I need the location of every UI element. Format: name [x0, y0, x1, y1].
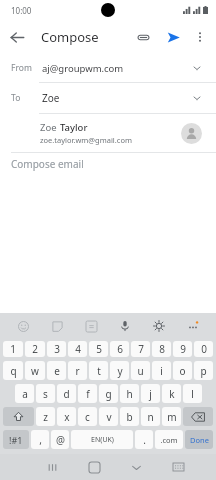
staticText: l [191, 387, 194, 401]
button[interactable]: k [162, 384, 181, 403]
staticText: z [43, 410, 48, 424]
staticText: i [160, 364, 163, 378]
staticText: u [137, 364, 144, 378]
button[interactable]: To [0, 83, 216, 113]
button[interactable]: 3 [47, 341, 66, 357]
staticText: 0 [201, 342, 207, 356]
staticText: p [200, 364, 207, 378]
staticText: .com [160, 435, 178, 445]
button[interactable]: j [141, 384, 160, 403]
staticText: t [97, 364, 101, 378]
button[interactable]: Send [158, 22, 188, 52]
button[interactable]: Voice input [114, 315, 136, 337]
button[interactable]: h [120, 384, 139, 403]
button[interactable]: From [0, 54, 216, 82]
staticText: EN(UK) [91, 435, 114, 445]
button[interactable]: Settings [148, 315, 170, 337]
staticText: 5 [96, 342, 102, 356]
button[interactable]: a [15, 384, 34, 403]
staticText: Compose email [11, 157, 84, 171]
button[interactable]: Zoe [0, 114, 216, 152]
button[interactable]: Home [73, 454, 115, 480]
staticText: 2 [32, 342, 38, 356]
button[interactable]: c [78, 407, 97, 426]
button[interactable]: GIF [80, 315, 102, 337]
button[interactable]: e [47, 361, 66, 380]
staticText: 9 [180, 342, 186, 356]
staticText: w [31, 364, 39, 378]
staticText: aj@groupwm.com [42, 62, 124, 75]
button[interactable]: 5 [89, 341, 108, 357]
button[interactable]: More options [188, 25, 212, 49]
staticText: 10:00 [11, 5, 32, 16]
button[interactable]: 4 [68, 341, 87, 357]
button[interactable]: Compose email [0, 153, 216, 175]
button[interactable]: More [182, 315, 204, 337]
button[interactable]: , [31, 430, 49, 449]
button[interactable]: t [89, 361, 108, 380]
button[interactable]: !#1 [3, 430, 29, 449]
button[interactable]: Emoji [12, 315, 34, 337]
button[interactable]: b [120, 407, 139, 426]
button[interactable]: @ [51, 430, 69, 449]
staticText: y [117, 364, 123, 378]
staticText: . [143, 433, 146, 447]
button[interactable]: EN(UK) [71, 430, 133, 449]
button[interactable]: Back [0, 20, 34, 54]
staticText: a [22, 387, 28, 401]
button[interactable]: s [36, 384, 55, 403]
staticText: Compose [41, 28, 99, 46]
button[interactable]: n [141, 407, 160, 426]
button[interactable]: 7 [131, 341, 150, 357]
staticText: 6 [117, 342, 123, 356]
button[interactable]: m [162, 407, 181, 426]
staticText: 3 [54, 342, 60, 356]
button[interactable]: 2 [25, 341, 45, 357]
button[interactable]: Done [185, 430, 213, 449]
button[interactable]: 8 [152, 341, 171, 357]
button[interactable]: r [68, 361, 87, 380]
staticText: zoe.taylor.wm@gmail.com [40, 135, 132, 145]
button[interactable]: x [57, 407, 76, 426]
button[interactable]: 6 [110, 341, 129, 357]
staticText: 8 [159, 342, 165, 356]
button[interactable]: q [3, 361, 23, 380]
staticText: 1 [10, 342, 16, 356]
button[interactable]: f [78, 384, 97, 403]
button[interactable]: Hide keyboard [115, 454, 157, 480]
button[interactable]: g [99, 384, 118, 403]
button[interactable]: 0 [194, 341, 213, 357]
staticText: x [64, 410, 70, 424]
button[interactable]: v [99, 407, 118, 426]
button[interactable]: . [135, 430, 153, 449]
staticText: To [11, 92, 37, 104]
staticText: d [63, 387, 70, 401]
button[interactable]: p [194, 361, 213, 380]
button[interactable]: 1 [3, 341, 23, 357]
button[interactable]: o [173, 361, 192, 380]
staticText: h [126, 387, 133, 401]
button[interactable]: 9 [173, 341, 192, 357]
button[interactable]: Attach file [128, 22, 158, 52]
staticText: g [105, 387, 112, 401]
button[interactable]: w [25, 361, 45, 380]
button[interactable]: Recents [32, 454, 73, 480]
staticText: k [169, 387, 175, 401]
button[interactable]: d [57, 384, 76, 403]
staticText: f [86, 387, 90, 401]
button[interactable]: .com [155, 430, 183, 449]
button[interactable]: Key [183, 407, 213, 426]
staticText: n [147, 410, 154, 424]
button[interactable]: Keyboard layout [157, 454, 199, 480]
button[interactable]: Stickers [46, 315, 68, 337]
button[interactable]: i [152, 361, 171, 380]
staticText: j [149, 387, 152, 401]
button[interactable]: z [36, 407, 55, 426]
button[interactable]: u [131, 361, 150, 380]
button[interactable]: l [183, 384, 202, 403]
button[interactable]: Key [3, 407, 34, 426]
button[interactable]: y [110, 361, 129, 380]
staticText: e [54, 364, 60, 378]
staticText: q [10, 364, 17, 378]
staticText: Taylor [60, 121, 88, 134]
